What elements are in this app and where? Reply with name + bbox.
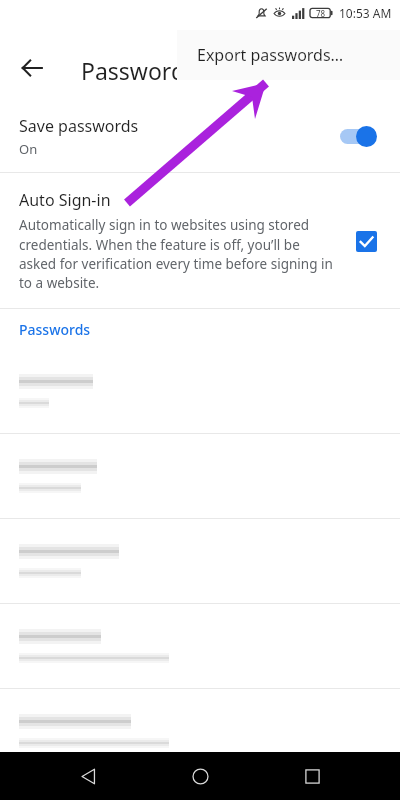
staticText: Auto Sign-in <box>19 189 111 211</box>
staticText: Automatically sign in to websites using … <box>19 216 334 292</box>
button[interactable] <box>0 434 400 518</box>
button[interactable]: Save passwords <box>0 100 400 172</box>
button[interactable] <box>0 774 400 800</box>
staticText: On <box>19 140 38 158</box>
button[interactable]: Auto Sign-in checkbox <box>348 223 384 259</box>
staticText: 78 <box>316 8 326 19</box>
button[interactable]: Back <box>12 48 52 88</box>
button[interactable]: Home <box>176 752 224 800</box>
staticText: Save passwords <box>19 115 139 137</box>
button[interactable]: Save passwords toggle <box>338 123 384 149</box>
button[interactable]: Recent apps <box>288 752 336 800</box>
staticText: Export passwords… <box>197 44 344 66</box>
button[interactable] <box>0 349 400 433</box>
button[interactable] <box>0 689 400 773</box>
staticText: Passwords <box>81 55 197 86</box>
button[interactable]: Auto Sign-in <box>0 173 400 308</box>
button[interactable]: Export passwords… <box>177 30 400 80</box>
button[interactable]: Back <box>64 752 112 800</box>
button[interactable] <box>0 519 400 603</box>
button[interactable] <box>0 604 400 688</box>
staticText: 10:53 AM <box>339 5 392 21</box>
staticText: Passwords <box>19 320 91 339</box>
